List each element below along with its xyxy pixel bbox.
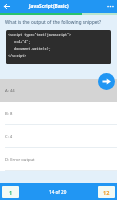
- staticText: document.write(x);: [8, 46, 51, 51]
- staticText: 14 of 20: [49, 189, 67, 195]
- button[interactable]: Back: [0, 0, 13, 13]
- button[interactable]: Next question: [98, 73, 115, 90]
- staticText: <script type="text/javascript">: [8, 32, 72, 37]
- button[interactable]: More options: [104, 0, 117, 13]
- button[interactable]: B: 8: [0, 102, 117, 125]
- button[interactable]: A: 44: [0, 79, 117, 102]
- staticText: 1: [9, 189, 13, 196]
- staticText: C: 4: [5, 134, 13, 140]
- staticText: B: 8: [5, 111, 13, 117]
- button[interactable]: 12: [98, 186, 115, 198]
- staticText: What is the output of the following snip…: [5, 19, 102, 25]
- button[interactable]: D: Error output: [0, 148, 117, 171]
- staticText: x=4+"4";: [8, 39, 31, 44]
- staticText: JavaScript(Basic): [29, 3, 69, 10]
- staticText: A: 44: [5, 88, 15, 94]
- staticText: 12: [103, 189, 110, 196]
- staticText: D: Error output: [5, 157, 35, 163]
- button[interactable]: C: 4: [0, 125, 117, 148]
- staticText: </script>: [8, 53, 27, 58]
- button[interactable]: 1: [2, 186, 19, 198]
